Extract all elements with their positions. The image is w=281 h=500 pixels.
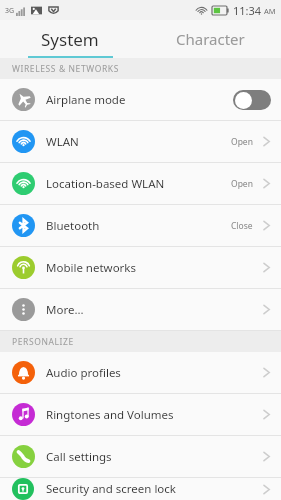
staticText: Airplane mode (46, 92, 126, 108)
button[interactable]: Airplane mode toggle (233, 90, 271, 110)
staticText: System (41, 28, 99, 51)
button[interactable]: Airplane mode (0, 79, 281, 120)
staticText: AM (264, 6, 276, 16)
staticText: Open (231, 136, 253, 148)
staticText: WLAN (46, 134, 79, 150)
button[interactable]: Call settings (0, 436, 281, 477)
staticText: 3G (5, 6, 15, 16)
button[interactable]: WLAN (0, 121, 281, 162)
staticText: Security and screen lock (46, 481, 176, 497)
button[interactable]: Mobile networks (0, 247, 281, 288)
button[interactable]: Ringtones and Volumes (0, 394, 281, 435)
button[interactable]: Character (140, 20, 281, 58)
staticText: Bluetooth (46, 218, 100, 234)
button[interactable]: More... (0, 289, 281, 330)
staticText: Location-based WLAN (46, 176, 165, 192)
button[interactable]: Bluetooth (0, 205, 281, 246)
staticText: Audio profiles (46, 365, 121, 381)
staticText: Call settings (46, 449, 112, 465)
staticText: Character (176, 29, 245, 49)
button[interactable]: Location-based WLAN (0, 163, 281, 204)
staticText: 11:34 (233, 3, 262, 18)
button[interactable]: System (0, 20, 140, 58)
button[interactable]: Security and screen lock (0, 478, 281, 500)
staticText: Mobile networks (46, 260, 137, 276)
staticText: WIRELESS & NETWORKS (12, 63, 119, 75)
staticText: PERSONALIZE (12, 336, 74, 348)
staticText: Open (231, 178, 253, 190)
staticText: Ringtones and Volumes (46, 407, 174, 423)
button[interactable]: Audio profiles (0, 352, 281, 393)
staticText: More... (46, 302, 84, 318)
staticText: Close (231, 220, 253, 232)
